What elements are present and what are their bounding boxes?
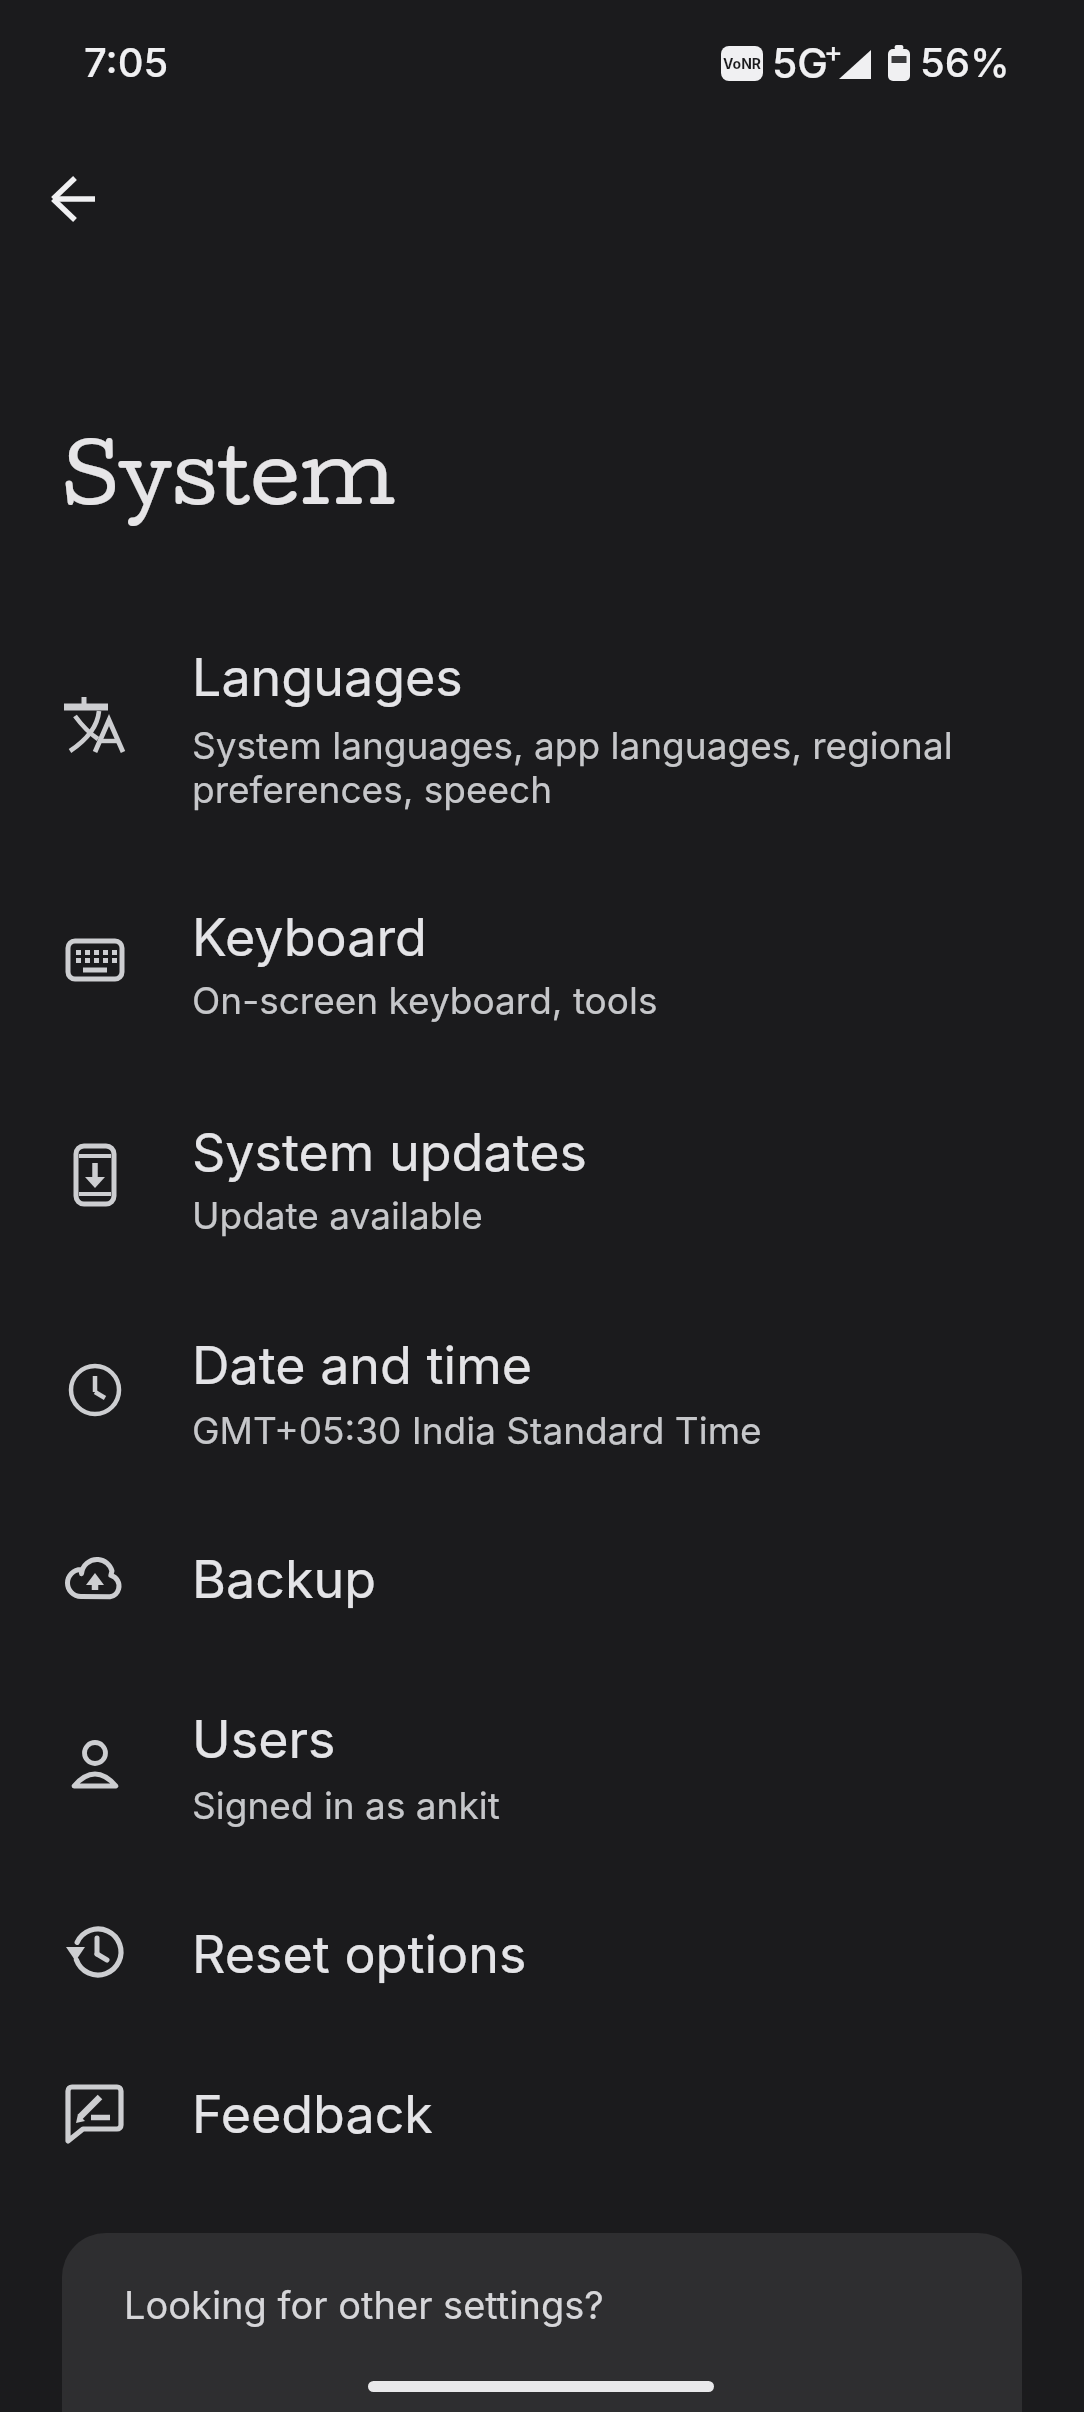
staticText: 5G [772, 38, 828, 88]
staticText: On-screen keyboard, tools [192, 978, 658, 1023]
staticText: System updates [192, 1121, 587, 1184]
staticText: 56% [920, 38, 1010, 86]
staticText: Update available [192, 1193, 483, 1238]
staticText: Date and time [192, 1334, 533, 1397]
staticText: Signed in as ankit [192, 1783, 500, 1828]
staticText: preferences, speech [192, 767, 553, 812]
staticText: Backup [192, 1548, 377, 1611]
staticText: Keyboard [192, 906, 427, 969]
staticText: Feedback [192, 2083, 433, 2146]
staticText: VoNR [723, 55, 762, 72]
staticText: + [824, 35, 843, 69]
staticText: System [62, 422, 396, 522]
staticText: Reset options [192, 1923, 527, 1986]
staticText: System languages, app languages, regiona… [192, 723, 953, 768]
staticText: 7:05 [84, 38, 169, 86]
staticText: Languages [192, 646, 463, 709]
staticText: Looking for other settings? [124, 2282, 604, 2328]
staticText: Users [192, 1708, 336, 1771]
staticText: GMT+05:30 India Standard Time [192, 1408, 762, 1453]
